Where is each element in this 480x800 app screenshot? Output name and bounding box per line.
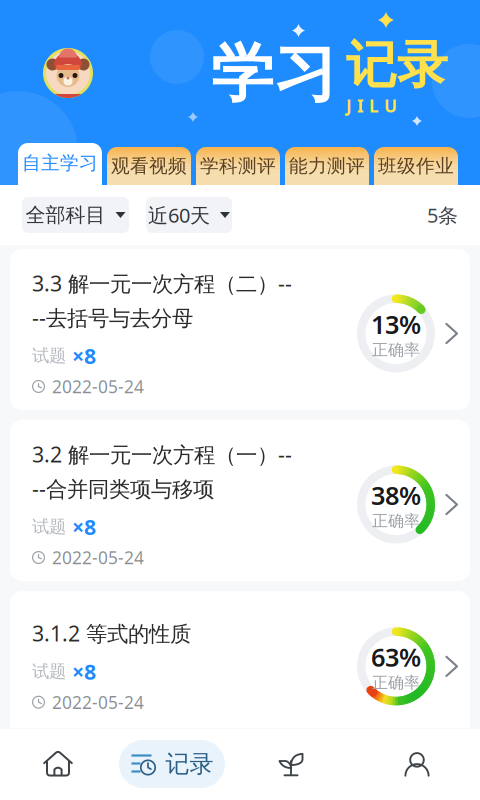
staticText: 学习 — [211, 35, 337, 112]
staticText: 2022-05-24 — [52, 375, 144, 398]
staticText: 正确率 — [372, 673, 420, 692]
staticText: 观看视频 — [111, 154, 187, 177]
staticText: --去括号与去分母 — [32, 303, 193, 332]
staticText: 近60天 — [148, 202, 210, 228]
staticText: 全部科目 — [25, 203, 105, 227]
staticText: 能力测评 — [289, 154, 365, 177]
staticText: 试题 — [32, 661, 66, 682]
staticText: 38% — [371, 478, 421, 512]
staticText: ×8 — [72, 342, 96, 370]
button[interactable]: 近60天 — [146, 197, 232, 233]
staticText: 2022-05-24 — [52, 546, 144, 569]
staticText: --合并同类项与移项 — [32, 474, 214, 503]
staticText: 正确率 — [372, 511, 420, 531]
staticText: ×8 — [72, 657, 96, 686]
staticText: 2022-05-24 — [52, 691, 144, 714]
staticText: 3.3 解一元一次方程（二）-- — [32, 269, 292, 297]
staticText: 试题 — [32, 345, 66, 366]
button[interactable]: 观看视频 — [107, 147, 191, 185]
staticText: J I L U — [346, 94, 397, 117]
button[interactable]: 能力测评 — [285, 147, 369, 185]
button[interactable]: 全部科目 — [22, 197, 129, 233]
button[interactable]: 首页 — [0, 728, 116, 800]
button[interactable]: 3.3 解一元一次方程（二）-- — [10, 249, 470, 410]
staticText: 3.1.2 等式的性质 — [32, 619, 191, 647]
button[interactable]: 成长 — [228, 728, 354, 800]
staticText: 班级作业 — [378, 154, 454, 177]
button[interactable]: 自主学习 — [18, 143, 102, 185]
staticText: 63% — [371, 640, 421, 674]
button[interactable]: 我的 — [354, 728, 480, 800]
button[interactable]: 班级作业 — [374, 147, 458, 185]
button[interactable]: 3.2 解一元一次方程（一）-- — [10, 420, 470, 581]
staticText: 自主学习 — [22, 151, 98, 174]
button[interactable]: 学科测评 — [196, 147, 280, 185]
staticText: 5条 — [427, 202, 458, 228]
staticText: 学科测评 — [200, 154, 276, 177]
staticText: 3.2 解一元一次方程（一）-- — [32, 440, 292, 468]
button[interactable]: 记录 — [116, 728, 228, 800]
staticText: 记录 — [165, 749, 213, 779]
staticText: 正确率 — [372, 340, 420, 360]
staticText: 试题 — [32, 516, 66, 537]
staticText: ×8 — [72, 513, 96, 541]
staticText: 记录 — [346, 34, 448, 96]
staticText: 13% — [371, 307, 421, 341]
button[interactable]: 3.1.2 等式的性质 — [10, 591, 470, 736]
